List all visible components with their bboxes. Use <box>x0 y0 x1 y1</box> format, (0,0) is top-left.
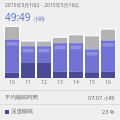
staticText: 2015年5月10日 - 2015年5月16日 <box>5 2 80 9</box>
staticText: 15 <box>89 79 95 86</box>
staticText: 49:49 <box>5 10 31 24</box>
staticText: 小時 <box>33 15 45 23</box>
button[interactable]: 2015年5月10日 - 2015年5月16日 <box>0 0 120 24</box>
staticText: 23 % <box>102 108 115 115</box>
staticText: 14 <box>73 79 79 86</box>
staticText: 16 <box>105 79 111 86</box>
button[interactable]: 平均睡眠時間 <box>0 91 120 104</box>
staticText: 10 <box>9 79 15 86</box>
staticText: 11 <box>25 79 31 86</box>
button[interactable]: 深度睡眠 <box>0 105 120 118</box>
staticText: 07:07 小時 <box>88 94 115 102</box>
staticText: 12 <box>41 79 47 86</box>
staticText: 13 <box>57 79 63 86</box>
staticText: 平均睡眠時間 <box>5 94 38 101</box>
button[interactable]: Weekly sleep chart <box>0 26 120 78</box>
staticText: 深度睡眠 <box>11 108 33 115</box>
